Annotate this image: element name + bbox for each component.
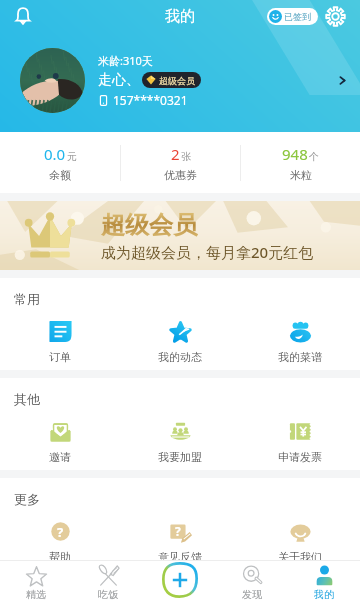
staticText: 948 bbox=[282, 144, 308, 164]
button[interactable]: 米龄:310天 bbox=[20, 47, 349, 113]
button[interactable]: Notifications bbox=[0, 0, 46, 32]
staticText: 157****0321 bbox=[113, 92, 188, 108]
staticText: 米粒 bbox=[290, 168, 312, 182]
button[interactable]: 我的动态 bbox=[120, 320, 240, 364]
staticText: 更多 bbox=[14, 491, 40, 507]
staticText: 申请发票 bbox=[278, 450, 322, 464]
staticText: ? bbox=[57, 523, 64, 541]
button[interactable]: 已签到 bbox=[267, 8, 318, 25]
staticText: ? bbox=[175, 523, 181, 539]
staticText: 发现 bbox=[242, 588, 262, 600]
staticText: 张 bbox=[181, 150, 191, 163]
staticText: 关于我们 bbox=[278, 550, 322, 560]
staticText: 优惠券 bbox=[164, 168, 197, 182]
button[interactable]: 0.0 bbox=[0, 132, 120, 193]
staticText: 我的动态 bbox=[158, 350, 202, 364]
staticText: 超级会员 bbox=[159, 75, 195, 86]
staticText: 走心、 bbox=[98, 71, 140, 89]
staticText: 超级会员 bbox=[101, 210, 197, 240]
button[interactable]: 我的菜谱 bbox=[240, 320, 360, 364]
staticText: 吃饭 bbox=[98, 588, 118, 600]
staticText: 精选 bbox=[26, 588, 46, 600]
button[interactable]: 邀请 bbox=[0, 420, 120, 464]
staticText: 我的 bbox=[314, 588, 334, 600]
staticText: 帮助 bbox=[49, 550, 71, 560]
button[interactable]: 我要加盟 bbox=[120, 420, 240, 464]
button[interactable]: 948 bbox=[241, 132, 360, 193]
button[interactable]: 关于我们 bbox=[240, 520, 360, 560]
button[interactable]: 精选 bbox=[0, 560, 72, 600]
staticText: 常用 bbox=[14, 291, 40, 307]
staticText: 成为超级会员，每月拿20元红包 bbox=[101, 242, 314, 262]
staticText: 0.0 bbox=[44, 144, 66, 164]
staticText: 我的菜谱 bbox=[278, 350, 322, 364]
button[interactable]: 申请发票 bbox=[240, 420, 360, 464]
button[interactable]: ? bbox=[120, 520, 240, 560]
button[interactable]: 2 bbox=[121, 132, 240, 193]
button[interactable]: Settings bbox=[318, 0, 352, 32]
staticText: 2 bbox=[171, 144, 180, 164]
staticText: 邀请 bbox=[49, 450, 71, 464]
staticText: 意见反馈 bbox=[158, 550, 202, 560]
button[interactable]: 超级会员 bbox=[0, 201, 360, 270]
staticText: 其他 bbox=[14, 391, 40, 407]
button[interactable]: 订单 bbox=[0, 320, 120, 364]
staticText: 余额 bbox=[49, 168, 71, 182]
button[interactable]: Add bbox=[162, 562, 198, 598]
button[interactable]: ? bbox=[0, 520, 120, 560]
staticText: 已签到 bbox=[284, 11, 311, 22]
staticText: 个 bbox=[309, 150, 319, 163]
staticText: 元 bbox=[67, 150, 77, 163]
button[interactable]: 吃饭 bbox=[72, 560, 144, 600]
staticText: 订单 bbox=[49, 350, 71, 364]
staticText: 我的 bbox=[165, 7, 195, 26]
staticText: 我要加盟 bbox=[158, 450, 202, 464]
staticText: 米龄:310天 bbox=[98, 53, 153, 68]
button[interactable]: 我的 bbox=[288, 560, 360, 600]
button[interactable]: 发现 bbox=[216, 560, 288, 600]
